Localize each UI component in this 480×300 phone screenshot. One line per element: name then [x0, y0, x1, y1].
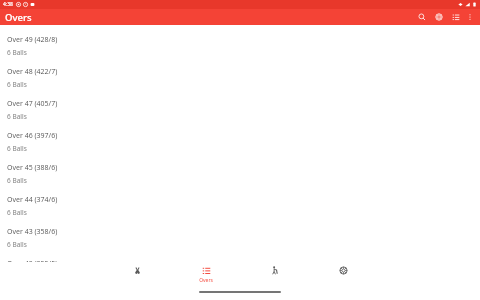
button[interactable]: Scorecard list [449, 10, 463, 24]
button[interactable]: Over 45 (388/6) [0, 158, 480, 190]
staticText: 6 Balls [7, 48, 27, 57]
staticText: Over 47 (405/7) [7, 99, 58, 109]
staticText: Over 43 (358/6) [7, 227, 58, 237]
button[interactable]: Over 47 (405/7) [0, 94, 480, 126]
staticText: 6 Balls [7, 176, 27, 185]
staticText: Over 49 (428/8) [7, 35, 58, 45]
button[interactable]: Ball [326, 264, 360, 275]
staticText: 6 Balls [7, 144, 27, 153]
staticText: Over 45 (388/6) [7, 163, 58, 173]
staticText: 6 Balls [7, 240, 27, 249]
button[interactable]: Cricket ball [432, 10, 446, 24]
button[interactable]: Overs [189, 264, 223, 284]
button[interactable]: Bats [120, 264, 154, 275]
staticText: Over 46 (397/6) [7, 131, 58, 141]
staticText: 6 Balls [7, 112, 27, 121]
button[interactable]: Over 46 (397/6) [0, 126, 480, 158]
staticText: 4:38 [3, 1, 13, 8]
button[interactable]: Over 44 (374/6) [0, 190, 480, 222]
button[interactable]: More options [464, 11, 476, 23]
staticText: Over 48 (422/7) [7, 67, 58, 77]
button[interactable]: Over 48 (422/7) [0, 62, 480, 94]
staticText: 6 Balls [7, 80, 27, 89]
button[interactable]: Search [415, 10, 429, 24]
staticText: Over 44 (374/6) [7, 195, 58, 205]
staticText: 6 Balls [7, 208, 27, 217]
staticText: Over 42 (355/5) [7, 259, 58, 262]
button[interactable]: Over 49 (428/8) [0, 30, 480, 62]
button[interactable]: Batsman [257, 264, 291, 275]
button[interactable]: Over 42 (355/5) [0, 254, 480, 262]
staticText: Overs [199, 277, 213, 284]
button[interactable]: Over 43 (358/6) [0, 222, 480, 254]
staticText: Overs [5, 11, 32, 24]
